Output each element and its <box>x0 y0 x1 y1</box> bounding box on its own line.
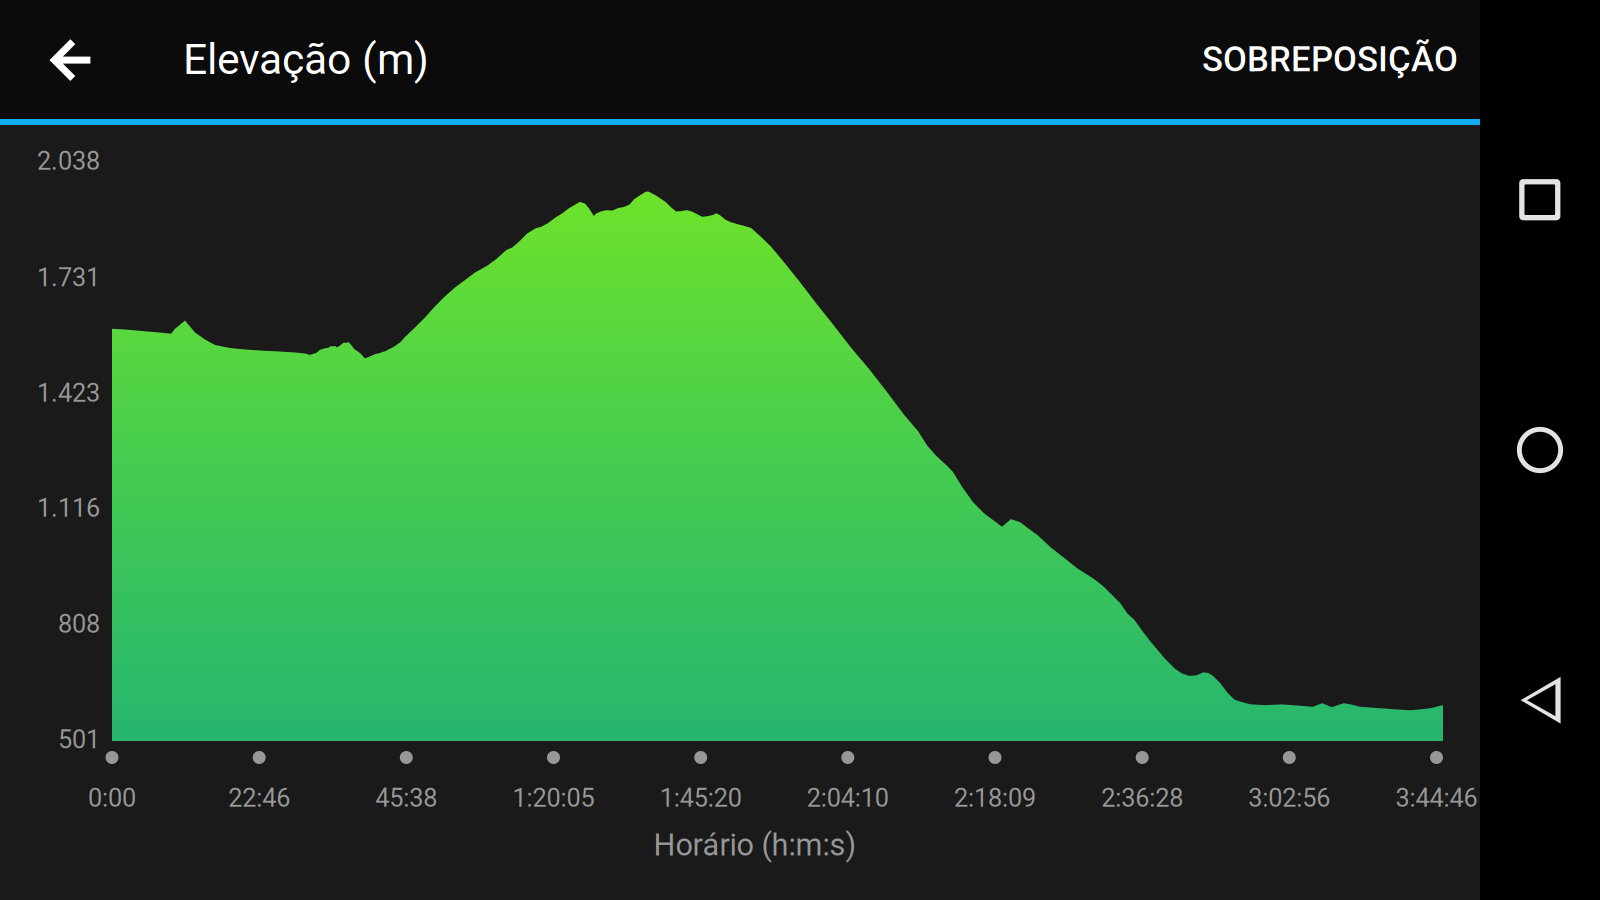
staticText: 1.116 <box>37 493 100 523</box>
staticText: Elevação (m) <box>183 34 429 84</box>
staticText: 501 <box>58 725 100 754</box>
button[interactable]: Elevação (m) <box>183 0 743 119</box>
button[interactable]: Recent apps <box>1502 162 1578 238</box>
staticText: Horário (h:m:s) <box>653 827 856 863</box>
staticText: 1.423 <box>37 378 100 408</box>
staticText: 22:46 <box>228 783 290 813</box>
staticText: SOBREPOSIÇÃO <box>1202 39 1458 80</box>
staticText: 1.731 <box>37 263 100 292</box>
staticText: 808 <box>58 609 100 639</box>
staticText: 1:20:05 <box>512 783 594 813</box>
staticText: 2:04:10 <box>807 783 889 813</box>
staticText: 3:02:56 <box>1248 783 1330 813</box>
staticText: 1:45:20 <box>660 783 742 813</box>
staticText: 0:00 <box>88 783 136 813</box>
staticText: 2:36:28 <box>1101 783 1183 813</box>
staticText: 3:44:46 <box>1395 783 1477 813</box>
staticText: 45:38 <box>375 783 437 813</box>
staticText: 2.038 <box>37 146 100 176</box>
button[interactable]: SOBREPOSIÇÃO <box>1038 0 1458 119</box>
button[interactable]: Back <box>1502 662 1578 738</box>
button[interactable]: Home <box>1502 412 1578 488</box>
button[interactable]: Back <box>20 1 124 120</box>
staticText: 2:18:09 <box>954 783 1036 813</box>
